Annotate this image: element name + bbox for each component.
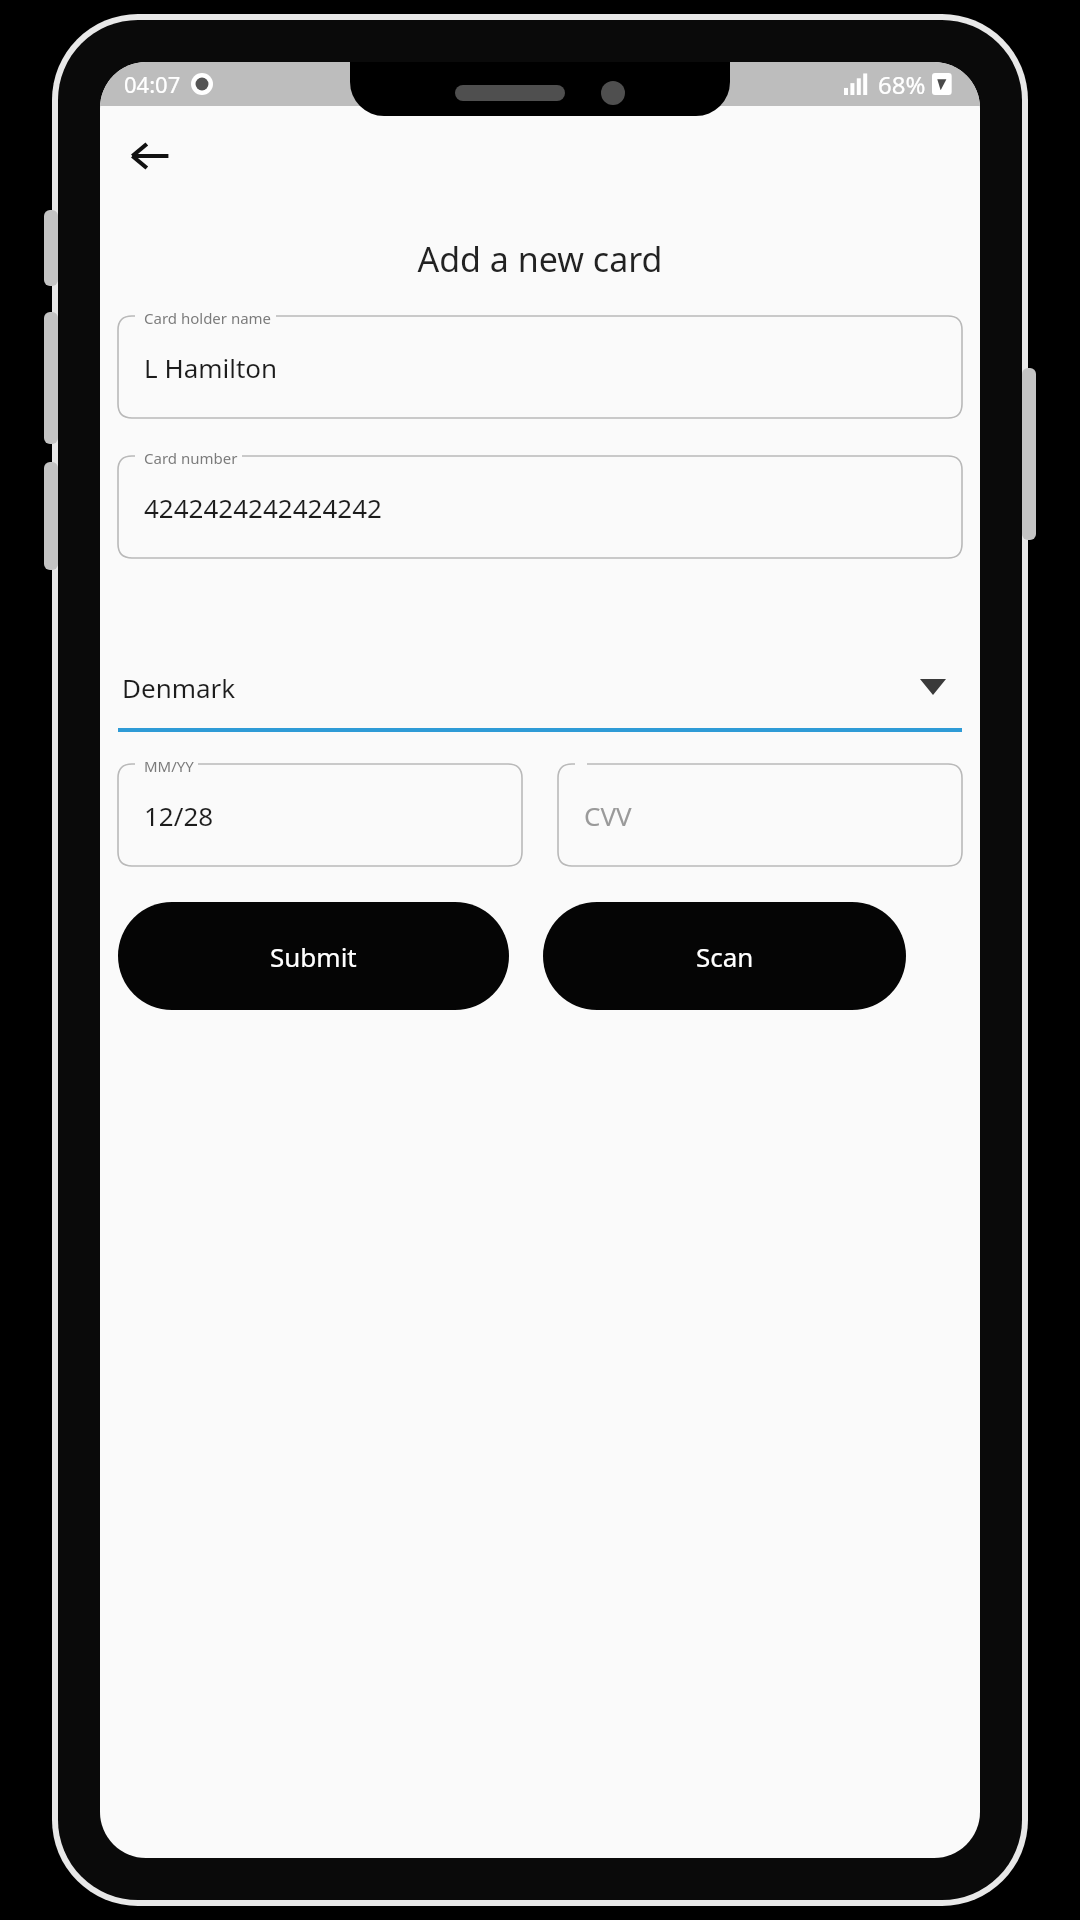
- staticText: L Hamilton: [144, 350, 278, 385]
- staticText: 04:07: [124, 69, 181, 99]
- button[interactable]: Submit: [118, 902, 509, 1010]
- staticText: Denmark: [122, 670, 236, 705]
- button[interactable]: Back: [114, 120, 186, 192]
- staticText: Card holder name: [144, 308, 272, 328]
- staticText: 12/28: [144, 798, 214, 833]
- staticText: Submit: [270, 939, 357, 974]
- staticText: Add a new card: [100, 236, 980, 282]
- button[interactable]: Denmark: [118, 642, 962, 732]
- button[interactable]: CVV: [558, 756, 962, 866]
- button[interactable]: Card number: [118, 448, 962, 558]
- staticText: MM/YY: [144, 756, 194, 776]
- staticText: Scan: [696, 939, 754, 974]
- staticText: 4242424242424242: [144, 490, 382, 525]
- button[interactable]: MM/YY: [118, 756, 522, 866]
- staticText: CVV: [584, 798, 632, 833]
- staticText: 68%: [878, 68, 926, 101]
- button[interactable]: Scan: [543, 902, 906, 1010]
- staticText: Card number: [144, 448, 238, 468]
- button[interactable]: Card holder name: [118, 308, 962, 418]
